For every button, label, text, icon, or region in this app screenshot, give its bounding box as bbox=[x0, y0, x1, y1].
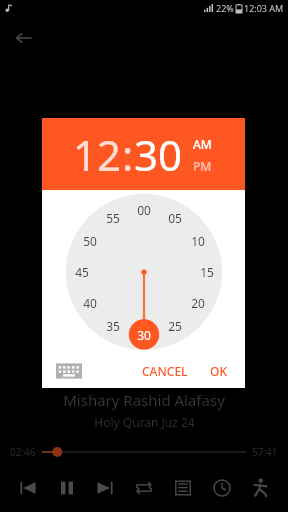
button[interactable]: Next bbox=[88, 471, 122, 505]
staticText: 55 bbox=[106, 210, 120, 226]
button[interactable]: CANCEL bbox=[134, 357, 196, 385]
staticText: 50 bbox=[83, 233, 97, 249]
staticText: 40 bbox=[83, 295, 97, 311]
button[interactable]: 20 bbox=[187, 292, 209, 314]
staticText: : bbox=[122, 126, 134, 183]
button[interactable]: 55 bbox=[102, 207, 124, 229]
staticText: 30 bbox=[137, 327, 151, 343]
staticText: 10 bbox=[191, 233, 205, 249]
button[interactable]: Playlist bbox=[166, 471, 200, 505]
button[interactable]: 40 bbox=[79, 292, 101, 314]
button[interactable]: 25 bbox=[164, 315, 186, 337]
button[interactable]: Walk mode bbox=[243, 471, 277, 505]
staticText: 12:03 AM bbox=[244, 2, 284, 14]
staticText: 45 bbox=[75, 264, 89, 280]
button[interactable] bbox=[42, 445, 246, 459]
button[interactable]: Sleep timer bbox=[205, 471, 239, 505]
staticText: 20 bbox=[191, 295, 205, 311]
button[interactable]: 10 bbox=[187, 230, 209, 252]
staticText: 57:41 bbox=[252, 445, 278, 459]
button[interactable]: 05 bbox=[164, 207, 186, 229]
staticText: Holy Quran Juz 24 bbox=[94, 414, 195, 430]
button[interactable]: PM bbox=[191, 157, 214, 175]
button[interactable]: OK bbox=[202, 357, 235, 385]
button[interactable]: 35 bbox=[102, 315, 124, 337]
staticText: 05 bbox=[168, 210, 182, 226]
button[interactable]: 50 bbox=[79, 230, 101, 252]
button[interactable]: Previous bbox=[11, 471, 45, 505]
staticText: 00 bbox=[137, 202, 151, 218]
button[interactable]: 45 bbox=[71, 261, 93, 283]
staticText: 15 bbox=[200, 264, 214, 280]
staticText: Mishary Rashid Alafasy bbox=[63, 390, 225, 410]
button[interactable]: Pause bbox=[50, 471, 84, 505]
button[interactable]: AM bbox=[191, 135, 214, 153]
button[interactable]: Repeat bbox=[127, 471, 161, 505]
staticText: PM bbox=[193, 158, 212, 174]
staticText: 35 bbox=[106, 318, 120, 334]
button[interactable]: 12 bbox=[73, 126, 122, 183]
staticText: 02:46 bbox=[10, 445, 36, 459]
staticText: CANCEL bbox=[142, 363, 188, 379]
button[interactable]: Switch to text input bbox=[56, 361, 82, 381]
staticText: 22% bbox=[216, 2, 234, 14]
staticText: 25 bbox=[168, 318, 182, 334]
button[interactable]: 00 bbox=[133, 199, 155, 221]
button[interactable]: 30 bbox=[134, 126, 183, 183]
button[interactable]: Back bbox=[10, 24, 38, 52]
button[interactable]: 30 bbox=[133, 324, 155, 346]
staticText: OK bbox=[210, 363, 227, 379]
button[interactable]: 15 bbox=[196, 261, 218, 283]
staticText: AM bbox=[193, 136, 212, 152]
